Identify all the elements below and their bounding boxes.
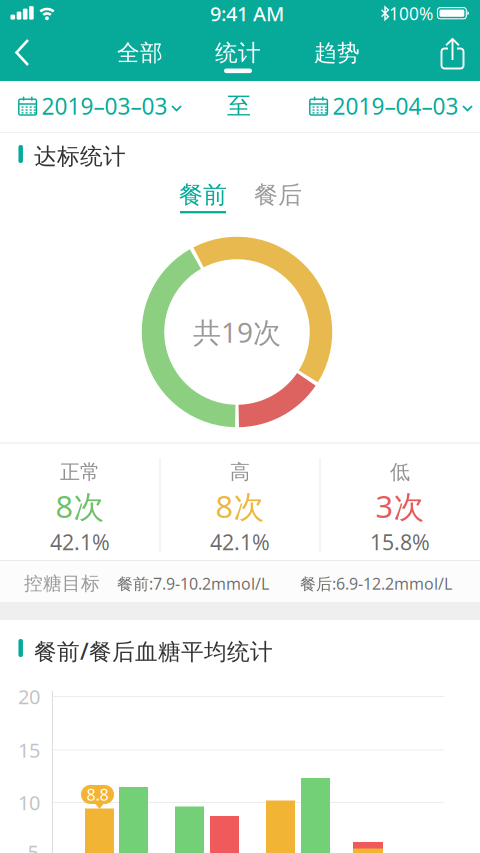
staticText: 共19次 — [193, 313, 281, 351]
button[interactable]: Back — [0, 30, 44, 74]
button[interactable]: 餐后 — [245, 173, 311, 217]
staticText: 8.8 — [86, 784, 108, 805]
button[interactable]: 2019–03–03 — [18, 80, 181, 132]
staticText: 42.1% — [50, 528, 110, 556]
staticText: 15.8% — [370, 528, 430, 556]
staticText: 9:41 AM — [210, 0, 284, 27]
staticText: 高 — [230, 460, 250, 484]
staticText: 统计 — [215, 39, 261, 67]
staticText: 3次 — [375, 486, 424, 526]
staticText: 2019–04–03 — [332, 91, 458, 121]
staticText: 餐后:6.9-12.2mmol/L — [300, 573, 452, 594]
staticText: 趋势 — [314, 39, 360, 67]
staticText: 10 — [18, 789, 40, 816]
button[interactable]: 2019–04–03 — [309, 80, 472, 132]
button[interactable]: 全部 — [105, 31, 175, 75]
staticText: 20 — [18, 683, 40, 710]
staticText: 2019–03–03 — [41, 91, 167, 121]
button[interactable]: Share — [430, 32, 474, 76]
staticText: 至 — [227, 91, 251, 121]
staticText: 42.1% — [210, 528, 270, 556]
button[interactable]: 趋势 — [302, 31, 372, 75]
button[interactable]: 统计 — [203, 31, 273, 75]
staticText: 餐前:7.9-10.2mmol/L — [117, 573, 269, 594]
staticText: 低 — [390, 460, 410, 484]
staticText: 8次 — [215, 486, 264, 526]
staticText: 15 — [18, 737, 40, 763]
staticText: 餐后 — [254, 180, 302, 210]
staticText: 100% — [389, 2, 433, 25]
staticText: 全部 — [117, 39, 163, 67]
staticText: 正常 — [60, 460, 100, 484]
staticText: 餐前 — [179, 180, 227, 210]
staticText: 控糖目标 — [24, 572, 100, 595]
staticText: 达标统计 — [34, 142, 126, 170]
staticText: 5 — [27, 839, 38, 853]
staticText: 餐前/餐后血糖平均统计 — [34, 636, 273, 666]
button[interactable]: 餐前 — [170, 173, 236, 217]
staticText: 8次 — [55, 486, 104, 526]
